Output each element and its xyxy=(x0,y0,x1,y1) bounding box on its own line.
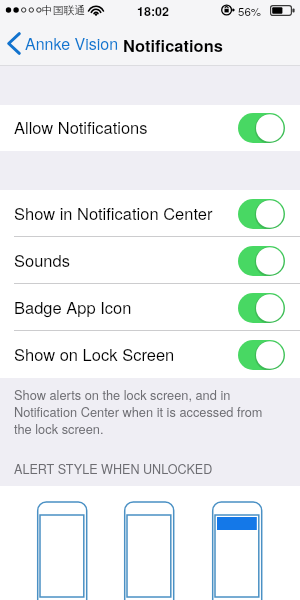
button[interactable]: Toggle, on xyxy=(238,340,285,370)
staticText: 中国联通 xyxy=(42,4,86,18)
staticText: 18:02 xyxy=(137,2,169,20)
button[interactable]: Banners alert style xyxy=(212,486,263,600)
button[interactable]: Sounds xyxy=(0,237,300,284)
button[interactable]: Annke Vision xyxy=(0,27,125,60)
staticText: Annke Vision xyxy=(25,32,119,55)
staticText: Allow Notifications xyxy=(14,115,148,139)
button[interactable]: Show on Lock Screen xyxy=(0,331,300,378)
button[interactable]: Toggle, on xyxy=(238,246,285,276)
staticText: Show alerts on the lock screen, and in N… xyxy=(14,385,280,437)
button[interactable]: Toggle, on xyxy=(238,293,285,323)
button[interactable]: Badge App Icon xyxy=(0,284,300,331)
staticText: Sounds xyxy=(14,248,70,272)
staticText: Notifications xyxy=(123,33,223,57)
staticText: Show in Notification Center xyxy=(14,201,213,225)
button[interactable]: Toggle, on xyxy=(238,199,285,229)
button[interactable]: Show in Notification Center xyxy=(0,190,300,237)
staticText: ALERT STYLE WHEN UNLOCKED xyxy=(14,460,213,478)
button[interactable]: Alert style xyxy=(37,486,88,600)
button[interactable]: Toggle, on xyxy=(238,113,285,143)
staticText: Show on Lock Screen xyxy=(14,342,175,366)
staticText: Badge App Icon xyxy=(14,295,132,319)
staticText: 56% xyxy=(238,3,262,19)
button[interactable]: Allow Notifications xyxy=(0,105,300,151)
button[interactable]: Alert style xyxy=(124,486,175,600)
